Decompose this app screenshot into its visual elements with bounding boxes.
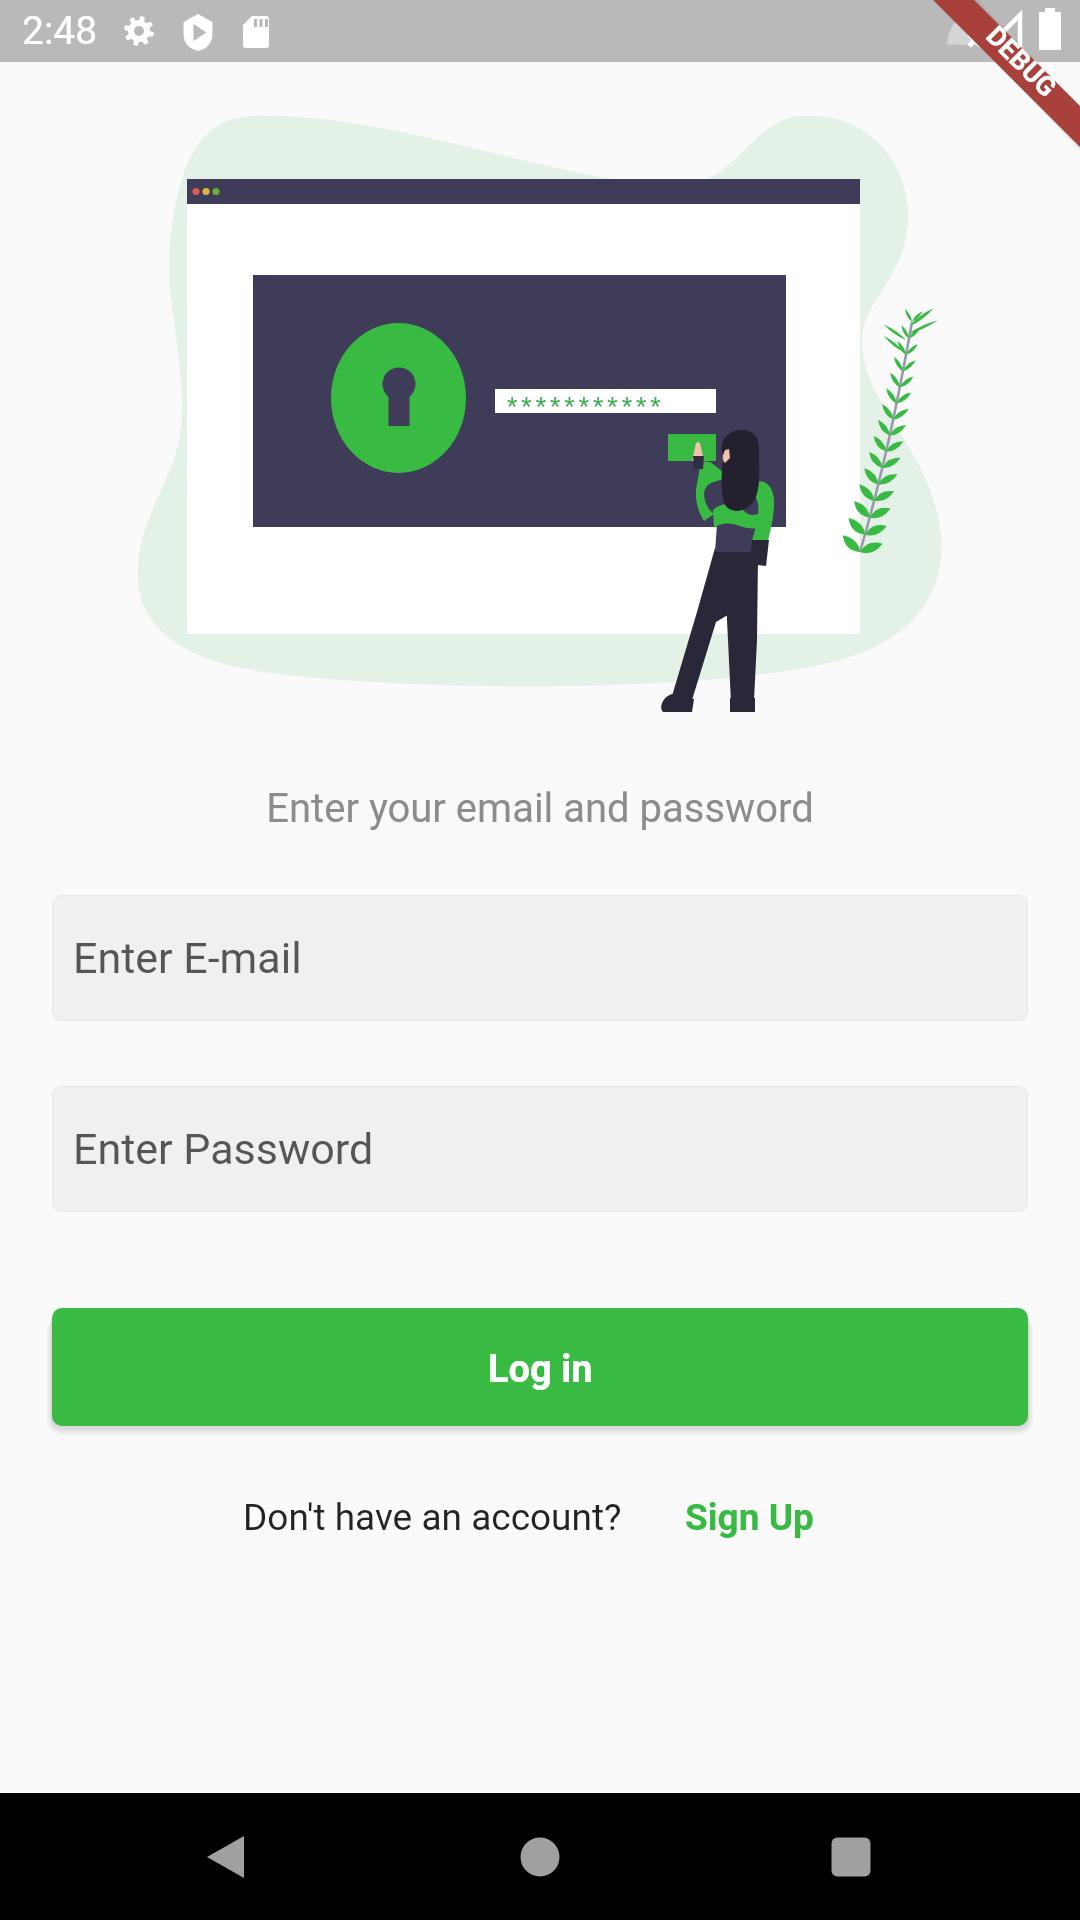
staticText: Enter Password [73,1124,374,1174]
staticText: Enter E-mail [73,933,302,983]
staticText: DEBUG [979,20,1063,104]
staticText: Log in [488,1347,593,1392]
staticText: 2:48 [22,8,98,54]
button[interactable]: Enter Password [52,1086,1028,1212]
button[interactable]: Enter E-mail [52,895,1028,1021]
button[interactable]: Back [165,1793,285,1920]
staticText: Don't have an account? [243,1496,622,1539]
button[interactable]: Sign Up [685,1496,814,1539]
button[interactable]: Recent apps [791,1793,911,1920]
button[interactable]: Home [480,1793,600,1920]
staticText: *********** [507,392,665,420]
button[interactable]: Log in [52,1308,1028,1426]
staticText: Sign Up [685,1496,814,1539]
staticText: Enter your email and password [0,785,1080,832]
